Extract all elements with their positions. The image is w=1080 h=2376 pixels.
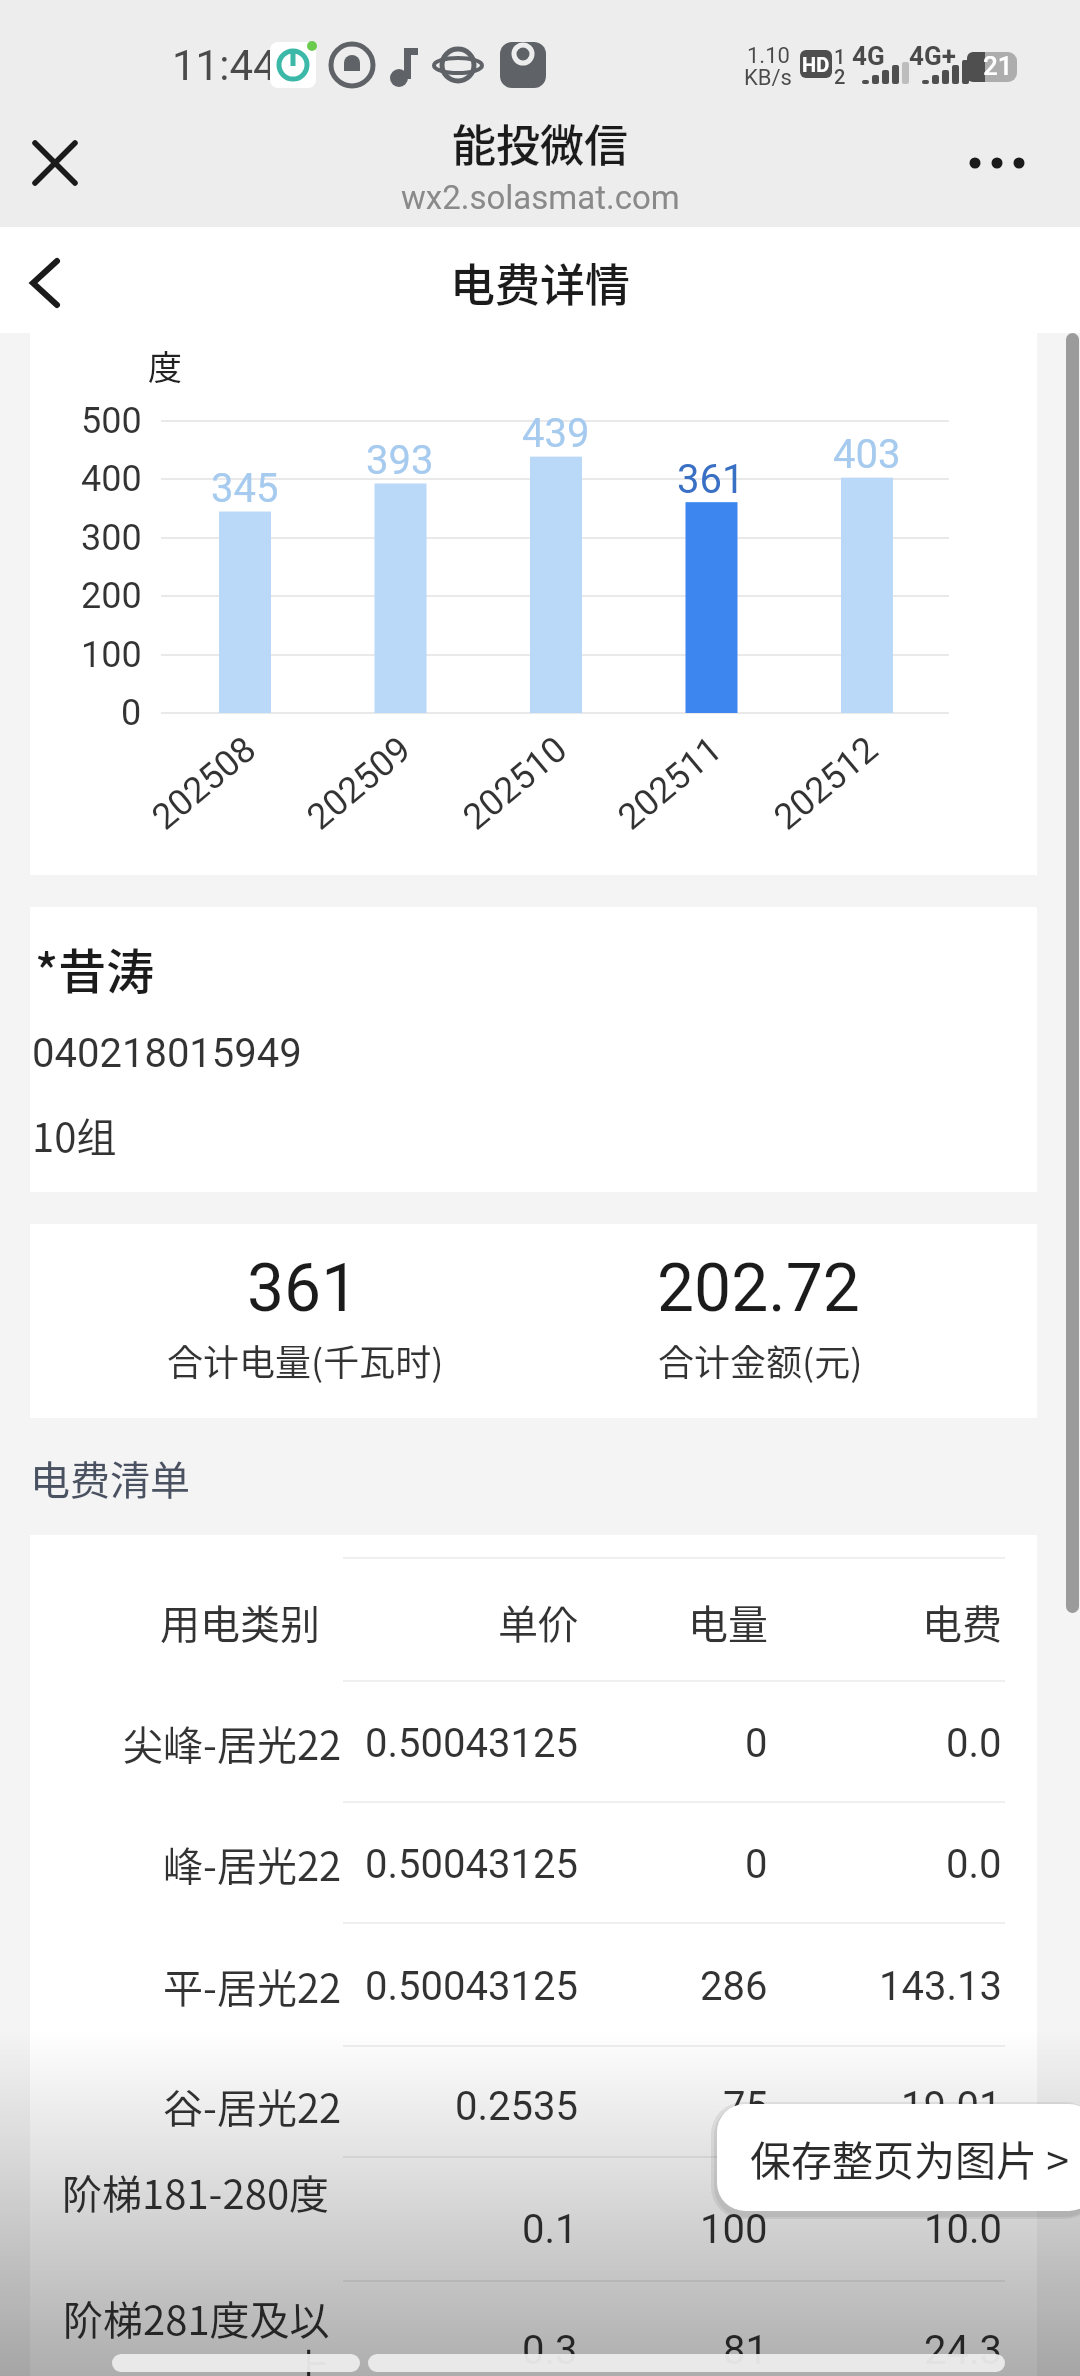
staticText: HD — [802, 53, 830, 76]
staticText: 0.50043125 — [365, 1963, 578, 2010]
staticText: 202508 — [144, 728, 264, 838]
staticText: 202512 — [766, 728, 886, 838]
staticText: 21 — [983, 51, 1013, 81]
staticText: 0.50043125 — [365, 1841, 578, 1888]
staticText: KB/s — [744, 65, 792, 91]
button[interactable] — [30, 138, 80, 188]
staticText: 403 — [833, 431, 901, 478]
staticText: 202510 — [455, 728, 575, 838]
staticText: 0.0 — [946, 1841, 1002, 1888]
staticText: 电量 — [688, 1593, 768, 1651]
staticText: *昔涛 — [35, 933, 155, 1003]
staticText: 电费详情 — [450, 250, 631, 315]
staticText: 单价 — [498, 1593, 578, 1651]
staticText: 度 — [148, 341, 182, 390]
staticText: 平-居光22 — [163, 1957, 342, 2015]
staticText: 4G — [852, 41, 885, 71]
staticText: 1.10 — [747, 43, 790, 69]
staticText: 0 — [745, 1841, 768, 1888]
staticText: 0.2535 — [455, 2083, 578, 2130]
staticText: 1 — [834, 45, 846, 68]
staticText: 合计金额(元) — [658, 1334, 863, 1386]
staticText: 2 — [834, 65, 846, 88]
staticText: 上 — [290, 2337, 330, 2376]
staticText: 393 — [366, 437, 434, 484]
staticText: 400 — [81, 458, 142, 500]
staticText: 10组 — [32, 1106, 117, 1164]
staticText: 用电类别 — [160, 1593, 320, 1651]
staticText: 0.3 — [522, 2327, 578, 2374]
staticText: 19.01 — [901, 2083, 1002, 2130]
staticText: 100 — [81, 634, 142, 676]
staticText: 电费 — [922, 1593, 1002, 1651]
staticText: 0 — [121, 692, 142, 734]
staticText: 尖峰-居光22 — [123, 1714, 342, 1772]
staticText: 200 — [81, 575, 142, 617]
staticText: 202511 — [610, 728, 730, 838]
button[interactable] — [20, 258, 72, 310]
staticText: 040218015949 — [32, 1030, 302, 1077]
staticText: 143.13 — [879, 1963, 1002, 2010]
staticText: 保存整页为图片 > — [750, 2128, 1069, 2187]
staticText: 10.0 — [924, 2206, 1002, 2253]
staticText: 能投微信 — [452, 111, 628, 175]
staticText: 合计电量(千瓦时) — [167, 1334, 444, 1386]
staticText: 286 — [700, 1963, 768, 2010]
staticText: 202.72 — [657, 1250, 860, 1327]
staticText: 300 — [81, 517, 142, 559]
staticText: 100 — [700, 2206, 768, 2253]
staticText: 阶梯281度及以 — [63, 2289, 330, 2347]
staticText: 0.1 — [522, 2206, 578, 2253]
staticText: 345 — [211, 465, 279, 512]
staticText: 阶梯181-280度 — [62, 2163, 330, 2221]
staticText: 361 — [247, 1250, 359, 1327]
staticText: 81 — [723, 2327, 768, 2374]
staticText: 11:44 — [172, 41, 277, 90]
staticText: 0.50043125 — [365, 1720, 578, 1767]
staticText: 75 — [723, 2083, 768, 2130]
staticText: 500 — [81, 400, 142, 442]
staticText: 202509 — [299, 728, 419, 838]
staticText: 谷-居光22 — [163, 2077, 342, 2135]
button[interactable]: 保存整页为图片 > — [717, 2104, 1080, 2211]
staticText: 4G+ — [909, 41, 956, 71]
staticText: wx2.solasmat.com — [401, 178, 680, 217]
staticText: 361 — [677, 456, 745, 503]
staticText: 峰-居光22 — [163, 1835, 342, 1893]
staticText: 0 — [745, 1720, 768, 1767]
staticText: 0.0 — [946, 1720, 1002, 1767]
button[interactable] — [962, 140, 1032, 186]
staticText: 电费清单 — [30, 1449, 190, 1507]
staticText: 439 — [522, 410, 590, 457]
staticText: 24.3 — [924, 2327, 1002, 2374]
